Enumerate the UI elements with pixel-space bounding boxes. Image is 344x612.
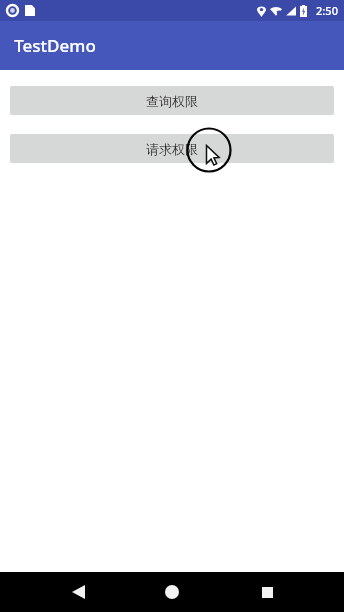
button[interactable]: 请求权限 bbox=[10, 134, 334, 163]
button[interactable]: Recent apps bbox=[247, 572, 287, 612]
button[interactable]: Home bbox=[152, 572, 192, 612]
staticText: TestDemo bbox=[14, 34, 96, 57]
staticText: 查询权限 bbox=[146, 93, 198, 109]
staticText: 2:50 bbox=[316, 3, 338, 18]
button[interactable]: 查询权限 bbox=[10, 86, 334, 115]
button[interactable]: Back bbox=[58, 572, 98, 612]
staticText: 请求权限 bbox=[146, 141, 198, 157]
